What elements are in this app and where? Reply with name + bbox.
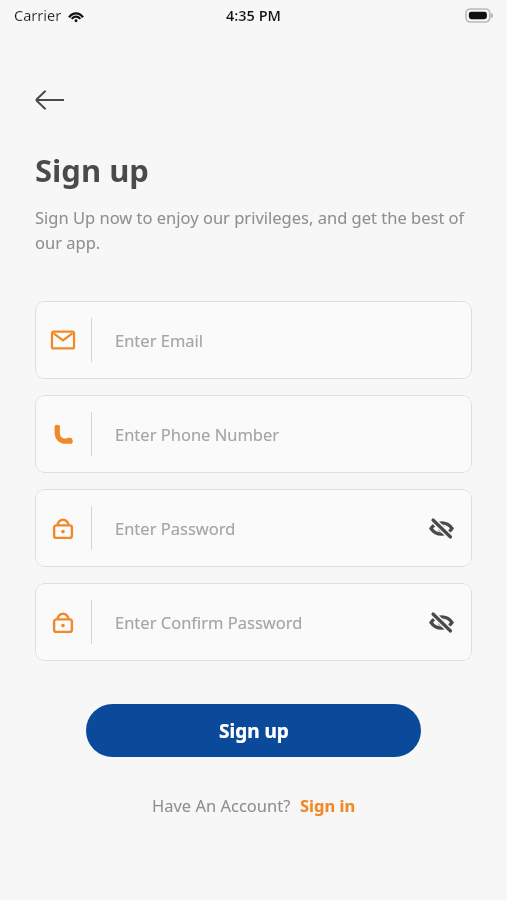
button[interactable]: Sign up (86, 704, 421, 757)
staticText: Enter Confirm Password (115, 611, 416, 633)
staticText: Enter Password (115, 517, 416, 539)
button[interactable]: Enter Email (35, 301, 472, 379)
button[interactable]: Enter Confirm Password (35, 583, 472, 661)
staticText: Enter Email (115, 329, 458, 351)
staticText: Sign up (219, 718, 289, 744)
staticText: Have An Account? (152, 794, 291, 816)
button[interactable]: Back (28, 78, 72, 122)
staticText: Sign Up now to enjoy our privileges, and… (35, 206, 475, 253)
button[interactable]: Toggle password visibility (416, 503, 466, 553)
button[interactable]: Enter Phone Number (35, 395, 472, 473)
staticText: Enter Phone Number (115, 423, 458, 445)
staticText: 4:35 PM (226, 5, 282, 25)
button[interactable]: Have An Account? (148, 790, 360, 820)
staticText: Carrier (14, 5, 62, 25)
staticText: Sign up (35, 149, 149, 191)
button[interactable]: Toggle password visibility (416, 597, 466, 647)
button[interactable]: Enter Password (35, 489, 472, 567)
staticText: Sign in (300, 794, 356, 816)
